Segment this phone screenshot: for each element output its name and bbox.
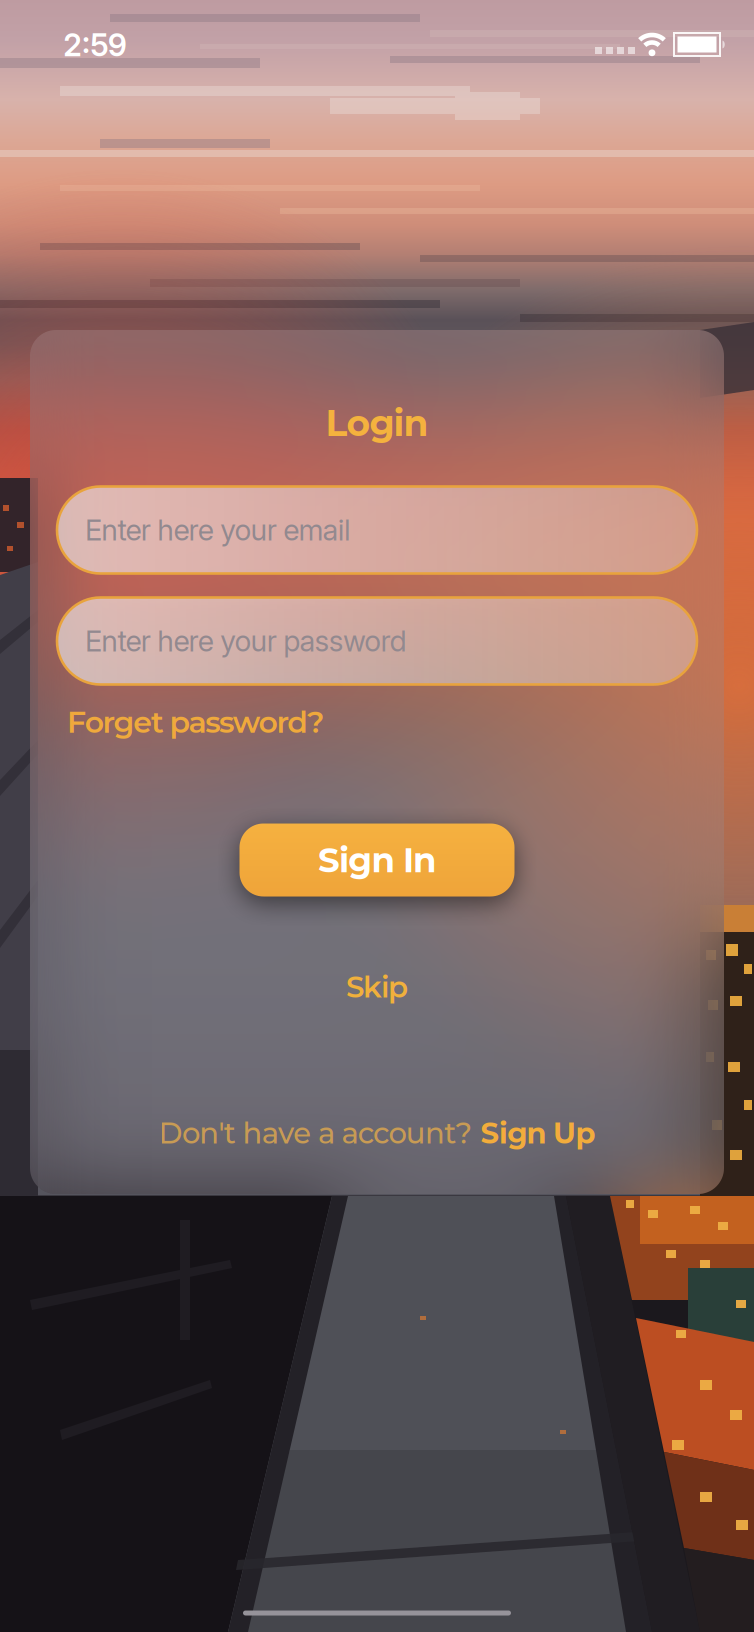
staticText: Enter here your email (85, 512, 351, 548)
staticText: Don't have a account? (159, 1115, 473, 1151)
button[interactable]: Enter here your email (57, 486, 697, 573)
button[interactable]: Don't have a account? (159, 1115, 595, 1151)
staticText: Sign In (318, 839, 436, 881)
staticText: 2:59 (63, 26, 127, 63)
staticText: Sign Up (481, 1115, 595, 1151)
button[interactable]: Sign In (239, 823, 514, 896)
button[interactable]: Skip (346, 969, 408, 1005)
staticText: Skip (346, 969, 408, 1005)
button[interactable]: Forget password? (30, 704, 724, 740)
staticText: Forget password? (67, 704, 324, 740)
button[interactable]: Enter here your password (57, 597, 697, 684)
staticText: Enter here your password (85, 623, 407, 659)
staticText: Login (325, 401, 428, 445)
